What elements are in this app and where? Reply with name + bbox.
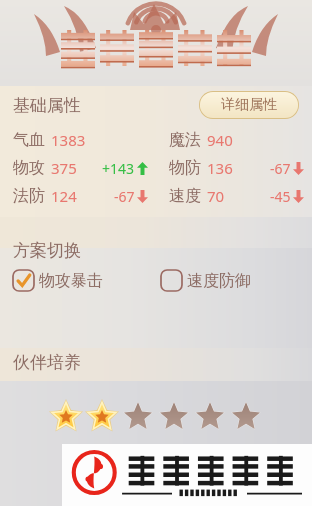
staticText: -67 — [270, 159, 291, 178]
staticText: 基础属性 — [13, 95, 81, 116]
staticText: 124 — [51, 186, 77, 206]
staticText: -67 — [114, 187, 135, 206]
staticText: 物攻暴击 — [39, 271, 103, 291]
staticText: 速度防御 — [187, 271, 251, 291]
staticText: 气血 — [13, 130, 45, 150]
staticText: -45 — [270, 187, 291, 206]
staticText: 详细属性 — [221, 96, 277, 114]
staticText: 物攻 — [13, 158, 45, 178]
button[interactable]: Star 2 — [84, 396, 120, 436]
button[interactable]: Star 3 — [120, 396, 156, 436]
button[interactable]: Star 6 — [228, 396, 264, 436]
button[interactable]: 速度防御 — [161, 268, 251, 293]
button[interactable]: 物攻暴击 — [13, 268, 103, 293]
button[interactable]: 详细属性 — [199, 91, 299, 119]
staticText: 魔法 — [169, 130, 201, 150]
staticText: 375 — [51, 158, 77, 178]
staticText: +143 — [102, 159, 135, 178]
staticText: 伙伴培养 — [13, 352, 81, 373]
staticText: 70 — [207, 186, 225, 206]
staticText: 方案切换 — [13, 240, 81, 261]
staticText: 1383 — [51, 130, 86, 150]
staticText: 速度 — [169, 186, 201, 206]
staticText: 物防 — [169, 158, 201, 178]
staticText: 法防 — [13, 186, 45, 206]
staticText: 940 — [207, 130, 233, 150]
button[interactable]: Star 1 — [48, 396, 84, 436]
button[interactable]: Star 4 — [156, 396, 192, 436]
staticText: 136 — [207, 158, 233, 178]
button[interactable]: Star 5 — [192, 396, 228, 436]
